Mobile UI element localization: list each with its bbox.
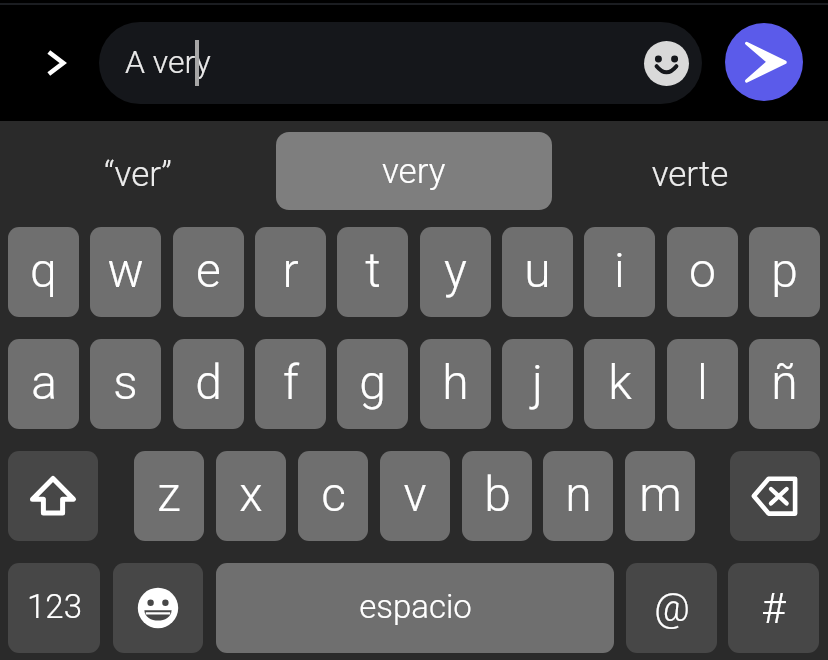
button[interactable]: f (255, 339, 326, 429)
staticText: # (761, 584, 786, 633)
button[interactable]: w (90, 227, 161, 317)
button[interactable]: q (8, 227, 79, 317)
staticText: j (532, 354, 543, 410)
staticText: o (689, 242, 716, 298)
button[interactable]: j (502, 339, 573, 429)
button[interactable]: Shift (8, 451, 98, 541)
staticText: i (614, 242, 625, 298)
button[interactable]: k (584, 339, 655, 429)
staticText: z (157, 466, 181, 522)
staticText: q (30, 242, 57, 298)
button[interactable]: very (276, 132, 552, 210)
button[interactable]: A very (99, 22, 702, 104)
staticText: a (31, 354, 57, 410)
button[interactable]: a (8, 339, 79, 429)
button[interactable]: y (420, 227, 491, 317)
staticText: g (359, 354, 386, 410)
button[interactable]: g (337, 339, 408, 429)
button[interactable]: Expand toolbar (28, 35, 84, 91)
button[interactable]: x (216, 451, 286, 541)
staticText: w (107, 242, 144, 298)
button[interactable]: 123 (8, 563, 100, 653)
staticText: d (195, 354, 222, 410)
staticText: y (444, 242, 467, 298)
button[interactable]: Switch to emoji (113, 563, 203, 653)
staticText: s (113, 354, 138, 410)
staticText: 123 (27, 587, 82, 626)
button[interactable]: h (420, 339, 491, 429)
button[interactable]: z (134, 451, 204, 541)
button[interactable]: ñ (749, 339, 820, 429)
button[interactable]: r (255, 227, 326, 317)
staticText: p (771, 242, 798, 298)
staticText: l (697, 354, 708, 410)
button[interactable]: l (667, 339, 738, 429)
staticText: c (321, 466, 346, 522)
staticText: espacio (359, 587, 472, 626)
button[interactable]: Send (725, 23, 803, 101)
button[interactable]: e (173, 227, 244, 317)
button[interactable]: t (337, 227, 408, 317)
button[interactable]: “ver” (0, 122, 276, 210)
staticText: f (283, 354, 299, 410)
staticText: b (484, 466, 511, 522)
staticText: k (608, 354, 632, 410)
staticText: r (282, 242, 299, 298)
button[interactable]: b (462, 451, 532, 541)
staticText: e (196, 242, 221, 298)
staticText: n (565, 466, 592, 522)
button[interactable]: v (380, 451, 450, 541)
staticText: h (442, 354, 469, 410)
staticText: v (403, 466, 427, 522)
button[interactable]: # (728, 563, 819, 653)
button[interactable]: @ (626, 563, 717, 653)
staticText: @ (654, 585, 690, 631)
button[interactable]: Emoji (644, 41, 689, 86)
button[interactable]: espacio (216, 563, 614, 653)
staticText: ñ (771, 354, 798, 410)
staticText: u (524, 242, 551, 298)
staticText: x (239, 466, 263, 522)
button[interactable]: u (502, 227, 573, 317)
staticText: t (365, 242, 381, 298)
staticText: very (382, 151, 446, 192)
button[interactable]: m (625, 451, 695, 541)
button[interactable]: i (584, 227, 655, 317)
staticText: A very (125, 43, 211, 81)
button[interactable]: verte (552, 122, 828, 210)
button[interactable]: d (173, 339, 244, 429)
button[interactable]: Backspace (730, 451, 820, 541)
button[interactable]: p (749, 227, 820, 317)
button[interactable]: c (298, 451, 368, 541)
button[interactable]: n (543, 451, 613, 541)
button[interactable]: s (90, 339, 161, 429)
staticText: m (639, 466, 682, 522)
button[interactable]: o (667, 227, 738, 317)
